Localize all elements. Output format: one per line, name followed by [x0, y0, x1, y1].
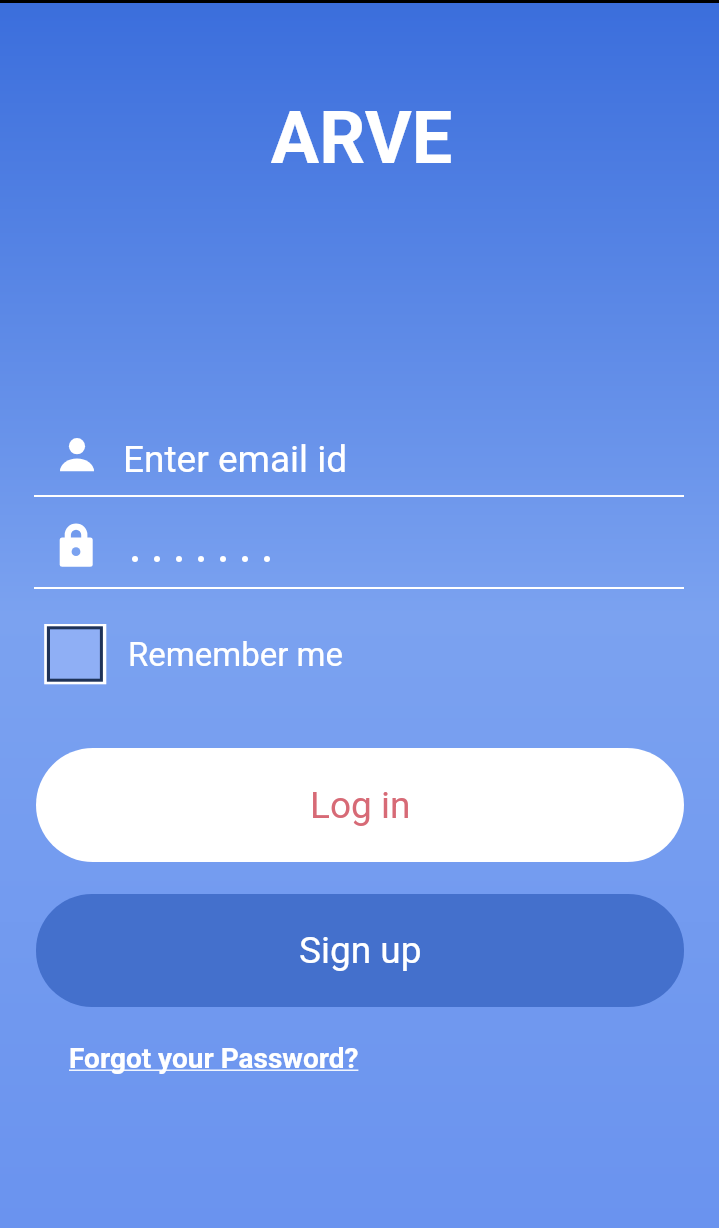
button[interactable]: Sign up [36, 894, 684, 1007]
other: Email [60, 434, 94, 474]
staticText: ARVE [2, 96, 719, 180]
staticText: Remember me [128, 635, 344, 674]
staticText: Enter email id [123, 438, 348, 481]
staticText: Sign up [299, 929, 422, 972]
button[interactable]: Password [34, 516, 684, 578]
button[interactable]: Forgot your Password? [69, 1042, 359, 1075]
other: Password [59, 518, 95, 566]
button[interactable]: Remember me [34, 616, 354, 692]
button[interactable]: Log in [36, 748, 684, 862]
button[interactable]: Email [34, 428, 684, 488]
staticText: Log in [310, 784, 411, 827]
staticText: Forgot your Password? [69, 1042, 359, 1075]
